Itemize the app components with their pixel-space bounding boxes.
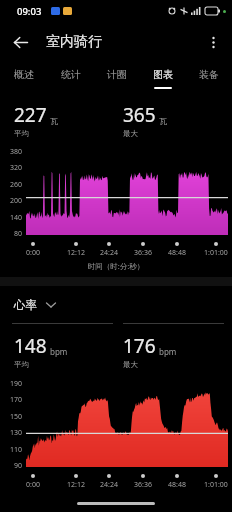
staticText: 227 [14,102,47,128]
staticText: 130 [10,428,23,438]
staticText: 心率 [14,298,37,312]
staticText: 170 [10,395,23,405]
button[interactable]: 概述 [0,62,47,94]
staticText: 瓦 [159,116,167,126]
staticText: 320 [10,163,23,173]
staticText: 装备 [199,68,219,81]
staticText: 24:24 [100,248,118,258]
staticText: 380 [10,147,23,157]
staticText: 瓦 [50,116,58,126]
staticText: 110 [10,445,23,455]
staticText: 365 [123,102,156,128]
button[interactable]: 图表 [140,62,186,94]
staticText: 0:00 [26,480,40,490]
staticText: 平均 [14,360,29,369]
staticText: 1:01:00 [204,248,228,258]
button[interactable]: 统计 [47,62,94,94]
staticText: 12:12 [67,480,85,490]
staticText: 12:12 [67,248,85,258]
staticText: 48:48 [168,248,186,258]
staticText: 概述 [14,68,34,81]
staticText: 148 [14,333,47,359]
staticText: 统计 [61,68,81,81]
staticText: 190 [10,379,23,389]
staticText: 室内骑行 [46,33,102,51]
button[interactable]: 装备 [186,62,232,94]
staticText: 36:36 [134,480,152,490]
staticText: 260 [10,180,23,190]
button[interactable]: 计圈 [94,62,140,94]
staticText: 最大 [123,129,138,138]
staticText: 时间（时:分:秒） [0,261,232,271]
staticText: 48:48 [168,480,186,490]
button[interactable]: 更多选项 [199,28,227,56]
staticText: bpm [159,346,177,357]
staticText: 09:03 [17,5,42,18]
button[interactable]: 心率 [0,298,232,312]
staticText: 图表 [153,68,173,81]
staticText: 平均 [14,129,29,138]
staticText: 90 [14,461,23,471]
staticText: 0:00 [26,248,40,258]
staticText: 计圈 [107,68,127,81]
staticText: 200 [10,196,23,206]
staticText: 24:24 [100,480,118,490]
staticText: 150 [10,412,23,422]
staticText: 140 [10,213,23,223]
staticText: bpm [50,346,68,357]
staticText: 176 [123,333,156,359]
staticText: 36:36 [134,248,152,258]
button[interactable]: 返回 [5,27,35,57]
staticText: 80 [14,229,23,239]
staticText: 最大 [123,360,138,369]
staticText: 1:01:00 [204,480,228,490]
